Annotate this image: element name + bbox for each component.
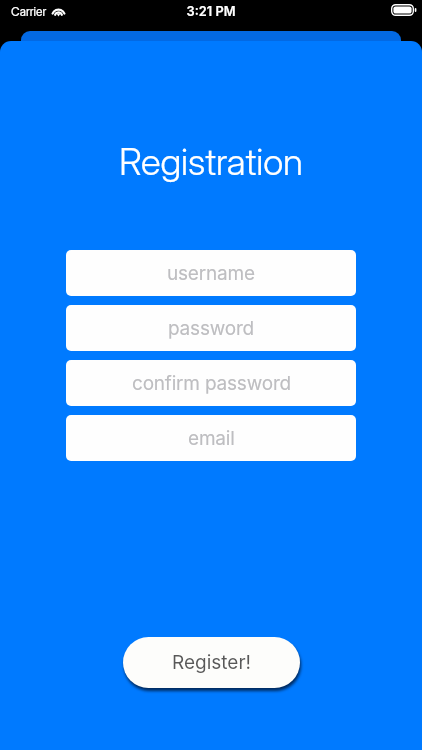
- other: Battery: [391, 4, 417, 16]
- button[interactable]: Register!: [123, 637, 300, 688]
- button[interactable]: username: [66, 250, 356, 296]
- staticText: 3:21 PM: [0, 4, 422, 19]
- staticText: password: [168, 317, 255, 340]
- staticText: confirm password: [132, 372, 291, 395]
- staticText: email: [188, 427, 235, 450]
- button[interactable]: email: [66, 415, 356, 461]
- button[interactable]: password: [66, 305, 356, 351]
- staticText: username: [167, 262, 255, 285]
- other: Wi-Fi: [51, 4, 66, 16]
- button[interactable]: confirm password: [66, 360, 356, 406]
- staticText: Carrier: [11, 4, 47, 19]
- staticText: Registration: [0, 139, 422, 184]
- staticText: Register!: [172, 651, 252, 674]
